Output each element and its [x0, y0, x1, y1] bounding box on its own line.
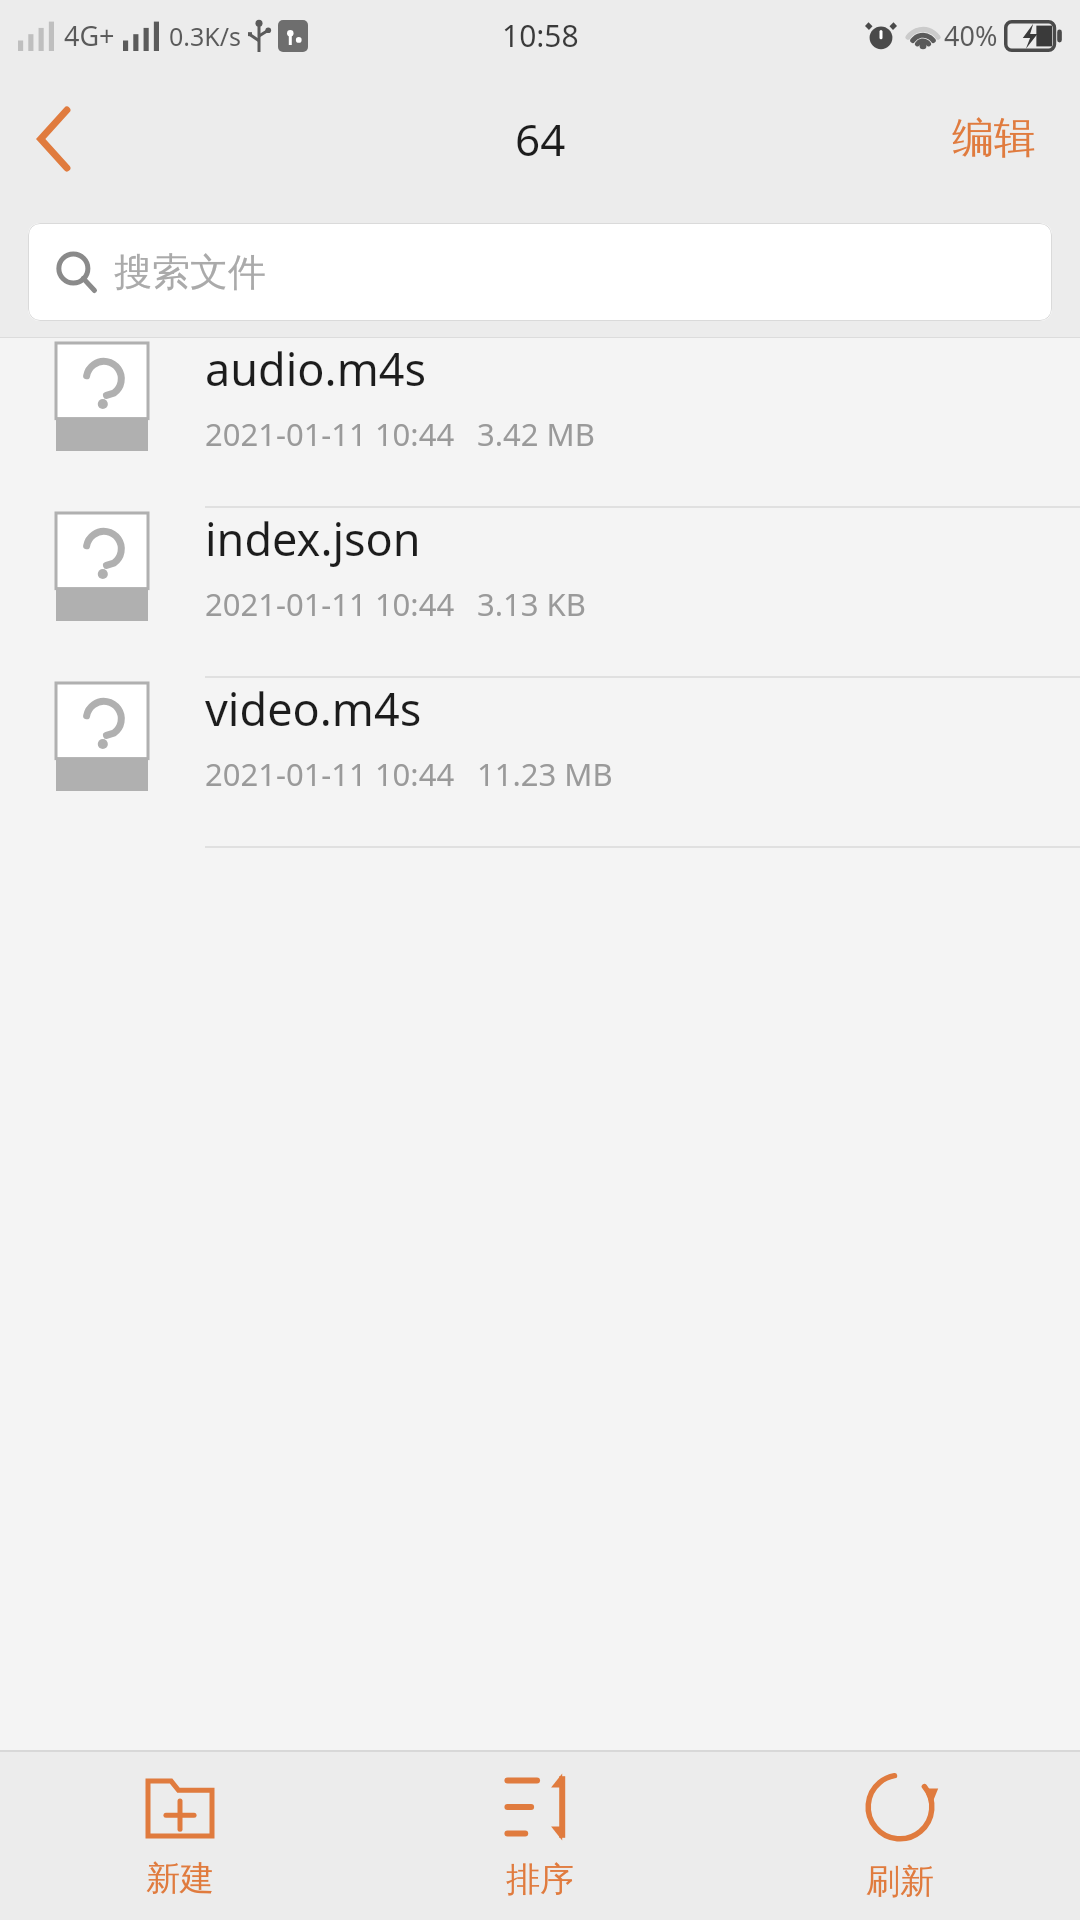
- staticText: 2021-01-11 10:44: [205, 583, 455, 625]
- staticText: 10:58: [502, 15, 579, 56]
- staticText: 新建: [146, 1857, 214, 1900]
- staticText: 刷新: [866, 1860, 934, 1903]
- button[interactable]: index.json: [0, 508, 1080, 678]
- staticText: 40%: [944, 17, 998, 54]
- staticText: 3.42 MB: [477, 413, 595, 455]
- staticText: 0.3K/s: [169, 19, 242, 53]
- button[interactable]: 编辑: [942, 102, 1046, 175]
- staticText: audio.m4s: [205, 338, 426, 399]
- staticText: 2021-01-11 10:44: [205, 413, 455, 455]
- button[interactable]: audio.m4s: [0, 338, 1080, 508]
- staticText: 3.13 KB: [477, 583, 586, 625]
- staticText: 64: [515, 109, 566, 169]
- button[interactable]: 搜索文件: [28, 223, 1052, 321]
- staticText: index.json: [205, 508, 421, 569]
- staticText: 编辑: [952, 112, 1036, 165]
- button[interactable]: 刷新: [720, 1752, 1080, 1920]
- staticText: 11.23 MB: [477, 753, 613, 795]
- button[interactable]: 新建: [0, 1752, 360, 1920]
- staticText: video.m4s: [205, 678, 422, 739]
- staticText: 搜索文件: [114, 248, 266, 296]
- staticText: 2021-01-11 10:44: [205, 753, 455, 795]
- button[interactable]: 排序: [360, 1752, 720, 1920]
- button[interactable]: Back: [0, 84, 110, 194]
- staticText: 4G+: [64, 17, 115, 54]
- staticText: 排序: [506, 1858, 574, 1901]
- button[interactable]: video.m4s: [0, 678, 1080, 848]
